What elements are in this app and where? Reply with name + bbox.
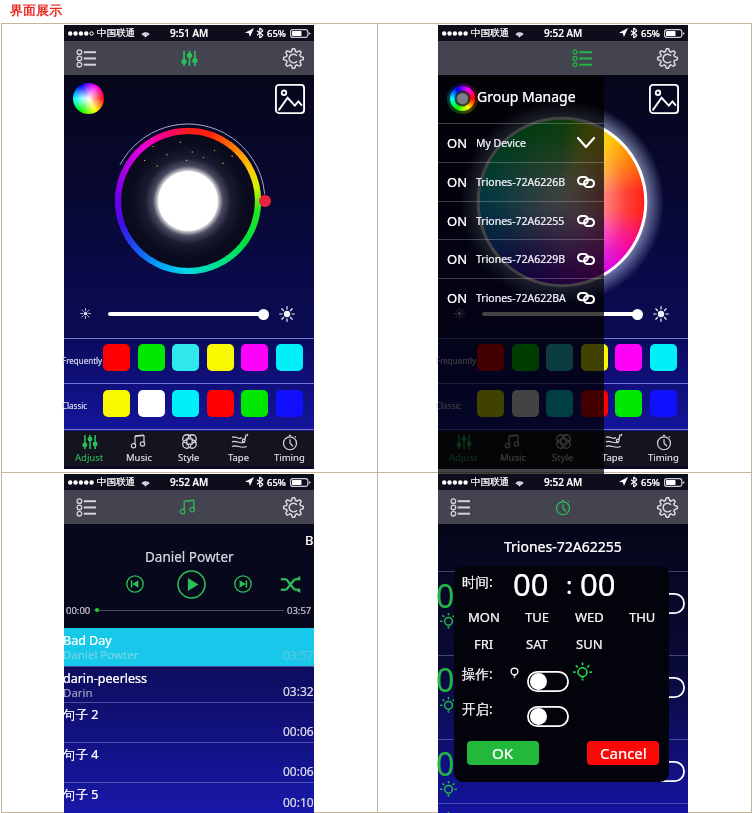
button[interactable] <box>241 390 268 417</box>
button[interactable]: Menu <box>72 46 100 70</box>
button[interactable]: Tape <box>588 431 638 466</box>
button[interactable] <box>477 344 504 371</box>
button[interactable]: ON <box>438 239 604 278</box>
button[interactable]: SUN <box>569 634 609 654</box>
button[interactable]: Settings <box>281 46 305 70</box>
staticText: 00:00 <box>436 742 518 786</box>
button[interactable]: OK <box>467 741 539 765</box>
staticText: 00:00 <box>66 604 91 617</box>
button[interactable]: 句子 2 <box>64 702 314 742</box>
button[interactable]: Mode <box>546 490 580 524</box>
button[interactable] <box>477 390 504 417</box>
button[interactable]: ON <box>438 123 604 162</box>
button[interactable] <box>172 390 199 417</box>
button[interactable]: ON <box>438 201 604 240</box>
button[interactable] <box>546 344 573 371</box>
button[interactable]: Brighten <box>279 306 295 322</box>
button[interactable]: Mode <box>172 490 206 524</box>
staticText: Tape <box>602 451 624 464</box>
button[interactable]: Cancel <box>587 741 659 765</box>
staticText: 9:52 AM <box>544 26 583 40</box>
button[interactable]: Menu <box>446 495 474 519</box>
button[interactable]: Color wheel <box>73 83 104 114</box>
button[interactable]: Style <box>164 431 214 466</box>
button[interactable]: darin-peerless <box>64 666 314 702</box>
button[interactable]: Settings <box>655 495 679 519</box>
button[interactable] <box>276 390 303 417</box>
button[interactable] <box>512 390 539 417</box>
staticText: 中国联通 <box>97 27 135 39</box>
staticText: Style <box>552 451 574 464</box>
button[interactable]: Style <box>538 431 588 466</box>
button[interactable]: Timing <box>638 431 688 466</box>
button[interactable] <box>581 344 608 371</box>
button[interactable]: THU <box>622 607 662 627</box>
staticText: Frequently <box>62 355 103 366</box>
staticText: Triones-72A62255 <box>476 214 565 228</box>
button[interactable] <box>207 344 234 371</box>
button[interactable]: Toggle <box>527 671 569 692</box>
button[interactable] <box>103 344 130 371</box>
button[interactable]: Group color <box>450 86 475 111</box>
button[interactable] <box>138 344 165 371</box>
button[interactable] <box>138 390 165 417</box>
button[interactable]: Settings <box>655 46 679 70</box>
button[interactable] <box>172 344 199 371</box>
button[interactable] <box>650 390 677 417</box>
button[interactable]: Mode <box>172 41 206 75</box>
button[interactable]: Menu <box>72 495 100 519</box>
button[interactable]: Next <box>234 575 252 593</box>
button[interactable]: Music <box>114 431 164 466</box>
button[interactable]: Settings <box>281 495 305 519</box>
button[interactable]: 句子 5 <box>64 782 314 813</box>
button[interactable] <box>276 344 303 371</box>
button[interactable] <box>512 344 539 371</box>
staticText: Darin <box>63 685 93 701</box>
button[interactable]: MON <box>464 607 504 627</box>
button[interactable]: WED <box>569 607 609 627</box>
button[interactable]: Group list <box>570 46 594 70</box>
staticText: 00:06 <box>283 763 314 779</box>
button[interactable]: 句子 4 <box>64 742 314 782</box>
button[interactable]: Dim <box>454 308 465 319</box>
button[interactable]: Dim <box>80 308 91 319</box>
button[interactable] <box>546 390 573 417</box>
button[interactable]: Brighten <box>653 306 669 322</box>
button[interactable]: Adjust <box>438 431 488 466</box>
button[interactable]: Pick image <box>275 84 305 114</box>
button[interactable]: Toggle <box>643 761 685 782</box>
button[interactable]: Brightness <box>632 309 643 320</box>
staticText: 9:52 AM <box>544 475 583 489</box>
staticText: 中国联通 <box>471 27 509 39</box>
button[interactable]: Tape <box>214 431 264 466</box>
button[interactable]: FRI <box>464 634 504 654</box>
button[interactable]: ON <box>438 278 604 317</box>
button[interactable]: Play <box>177 570 206 599</box>
button[interactable]: Timing <box>264 431 314 466</box>
button[interactable] <box>241 344 268 371</box>
button[interactable]: TUE <box>517 607 557 627</box>
staticText: FRI <box>474 635 494 653</box>
button[interactable]: ON <box>438 162 604 201</box>
button[interactable]: Music <box>488 431 538 466</box>
staticText: 03:32 <box>283 683 314 699</box>
button[interactable]: Adjust <box>64 431 114 466</box>
button[interactable]: Pick image <box>649 84 679 114</box>
button[interactable]: Toggle <box>643 593 685 614</box>
button[interactable]: Previous <box>126 575 144 593</box>
staticText: 操作: <box>462 665 493 683</box>
button[interactable]: SAT <box>517 634 557 654</box>
button[interactable]: Toggle <box>643 677 685 698</box>
button[interactable] <box>615 344 642 371</box>
button[interactable]: Bad Day <box>64 628 314 666</box>
button[interactable]: Toggle <box>527 706 569 727</box>
button[interactable] <box>581 390 608 417</box>
button[interactable] <box>650 344 677 371</box>
staticText: My Device <box>476 136 526 150</box>
button[interactable]: Shuffle <box>280 574 301 595</box>
button[interactable] <box>615 390 642 417</box>
button[interactable]: Color wheel <box>447 83 478 114</box>
button[interactable]: Brightness <box>258 309 269 320</box>
button[interactable] <box>103 390 130 417</box>
button[interactable] <box>207 390 234 417</box>
